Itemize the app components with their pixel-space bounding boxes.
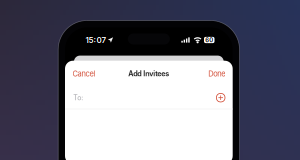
button[interactable]: Done <box>203 65 230 82</box>
staticText: Add Invitees <box>128 69 169 78</box>
staticText: 15:07 <box>85 35 106 45</box>
staticText: To: <box>73 93 83 102</box>
button[interactable]: Add contact <box>215 92 226 103</box>
staticText: Done <box>208 69 225 78</box>
staticText: Cancel <box>72 69 95 78</box>
button[interactable]: Cancel <box>67 65 100 82</box>
staticText: 60 <box>205 36 213 44</box>
